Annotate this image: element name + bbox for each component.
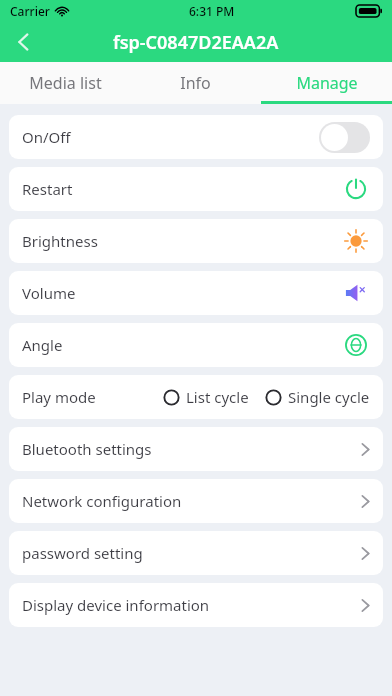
staticText: Brightness <box>22 231 98 251</box>
button[interactable]: Manage <box>261 62 392 104</box>
button[interactable]: Bluetooth settings <box>9 427 383 471</box>
button[interactable]: Single cycle <box>265 383 370 411</box>
button[interactable]: Angle <box>342 331 370 359</box>
button[interactable]: On/Off toggle <box>319 122 370 153</box>
button[interactable]: Angle <box>9 323 383 367</box>
staticText: Bluetooth settings <box>22 439 152 459</box>
button[interactable]: On/Off <box>9 115 383 159</box>
button[interactable]: Brightness <box>342 227 370 255</box>
button[interactable]: Restart <box>9 167 383 211</box>
staticText: On/Off <box>22 127 71 147</box>
button[interactable]: List cycle <box>163 383 249 411</box>
staticText: Restart <box>22 179 73 199</box>
staticText: 6:31 PM <box>189 3 235 19</box>
staticText: Play mode <box>22 387 96 407</box>
staticText: Display device information <box>22 595 210 615</box>
staticText: Angle <box>22 335 63 355</box>
staticText: List cycle <box>186 387 249 407</box>
staticText: Volume <box>22 283 76 303</box>
button[interactable]: password setting <box>9 531 383 575</box>
button[interactable]: Brightness <box>9 219 383 263</box>
staticText: Carrier <box>10 3 50 19</box>
staticText: Network configuration <box>22 491 182 511</box>
button[interactable]: Media list <box>0 62 130 104</box>
button[interactable]: Volume <box>9 271 383 315</box>
button[interactable]: Display device information <box>9 583 383 627</box>
button[interactable]: Volume <box>342 279 370 307</box>
button[interactable]: Restart <box>342 175 370 203</box>
staticText: password setting <box>22 543 143 563</box>
staticText: Media list <box>29 72 102 94</box>
button[interactable]: Network configuration <box>9 479 383 523</box>
staticText: Info <box>180 72 211 94</box>
staticText: Single cycle <box>288 387 370 407</box>
staticText: Manage <box>296 72 358 94</box>
staticText: fsp-C0847D2EAA2A <box>113 30 279 55</box>
button[interactable]: Info <box>130 62 261 104</box>
button[interactable]: Back <box>0 22 46 62</box>
